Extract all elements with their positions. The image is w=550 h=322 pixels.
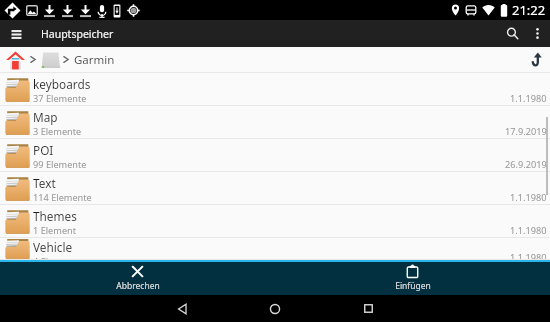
staticText: 37 Elemente <box>33 92 87 105</box>
button[interactable]: Navigation menu <box>0 20 32 47</box>
staticText: 1.1.1980 <box>510 92 547 105</box>
staticText: Map <box>33 109 58 125</box>
staticText: Hauptspeicher <box>41 27 114 41</box>
button[interactable]: Text <box>0 172 550 205</box>
staticText: 1.1.1980 <box>510 191 547 204</box>
button[interactable]: Recent apps <box>340 295 396 322</box>
staticText: keyboards <box>33 76 91 92</box>
button[interactable]: Internal storage <box>40 48 61 71</box>
button[interactable]: Paste <box>275 262 550 295</box>
button[interactable]: More options <box>526 20 548 47</box>
staticText: 99 Elemente <box>33 158 87 171</box>
button[interactable]: Search <box>498 20 526 47</box>
button[interactable]: Back <box>154 295 210 322</box>
button[interactable]: POI <box>0 139 550 172</box>
staticText: 1 Element <box>33 224 77 237</box>
button[interactable]: Home <box>5 48 26 71</box>
staticText: 26.9.2019 <box>505 158 547 171</box>
staticText: Vehicle <box>33 239 73 255</box>
button[interactable]: Go to parent folder <box>523 47 549 72</box>
staticText: 114 Elemente <box>33 191 92 204</box>
staticText: 1.1.1980 <box>510 251 547 264</box>
staticText: 17.9.2019 <box>505 125 547 138</box>
staticText: Text <box>33 175 56 191</box>
button[interactable]: Home <box>247 295 303 322</box>
staticText: 4 Elemente <box>33 255 82 260</box>
button[interactable]: Themes <box>0 205 550 238</box>
button[interactable]: keyboards <box>0 73 550 106</box>
button[interactable]: Garmin <box>74 52 115 68</box>
staticText: 21:22 <box>512 1 546 19</box>
staticText: Themes <box>33 208 77 224</box>
staticText: 1.1.1980 <box>510 224 547 237</box>
button[interactable]: Cancel <box>0 262 275 295</box>
button[interactable]: Map <box>0 106 550 139</box>
staticText: Einfügen <box>395 280 431 292</box>
staticText: POI <box>33 142 54 158</box>
staticText: 3 Elemente <box>33 125 82 138</box>
button[interactable]: Vehicle <box>0 238 550 260</box>
staticText: Abbrechen <box>116 280 160 292</box>
